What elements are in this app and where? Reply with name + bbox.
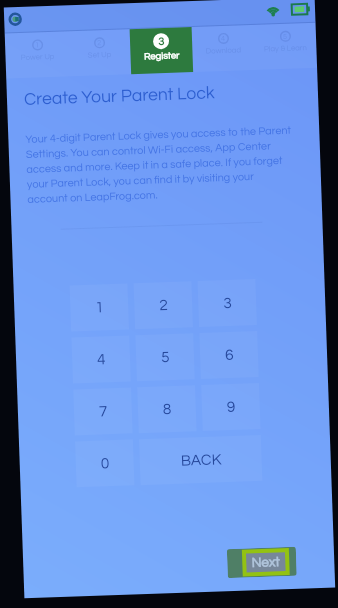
staticText: 1 xyxy=(95,299,105,316)
staticText: 4 xyxy=(221,35,226,43)
staticText: 7 xyxy=(99,403,108,419)
button[interactable]: 0 xyxy=(75,439,135,487)
staticText: Play & Learn xyxy=(263,44,308,53)
button[interactable]: 1 xyxy=(5,31,69,79)
staticText: 6 xyxy=(225,347,234,363)
staticText: Register xyxy=(143,50,180,62)
staticText: 0 xyxy=(100,455,110,471)
staticText: Next xyxy=(251,555,281,570)
staticText: 4 xyxy=(97,351,106,368)
staticText: Power Up xyxy=(20,53,55,62)
staticText: 1 xyxy=(35,41,40,50)
button[interactable]: 5 xyxy=(253,23,317,70)
staticText: Download xyxy=(205,46,242,56)
staticText: 5 xyxy=(161,349,170,365)
button[interactable]: 3 xyxy=(130,27,193,74)
staticText: 5 xyxy=(283,33,288,41)
staticText: Your 4-digit Parent Lock gives you acces… xyxy=(25,125,295,205)
button[interactable]: BACK xyxy=(139,435,262,485)
staticText: 9 xyxy=(227,399,236,415)
button[interactable]: 2 xyxy=(133,281,193,329)
button[interactable]: 4 xyxy=(71,335,131,383)
button[interactable]: 8 xyxy=(137,385,197,433)
other: Wi-Fi xyxy=(266,3,280,17)
button[interactable]: 2 xyxy=(68,29,131,76)
button[interactable]: 9 xyxy=(201,383,261,431)
other: Battery xyxy=(291,3,310,16)
button[interactable]: 6 xyxy=(199,331,259,379)
button[interactable]: 5 xyxy=(135,333,195,381)
button[interactable]: 3 xyxy=(197,279,257,327)
button[interactable]: 7 xyxy=(73,387,133,435)
staticText: Create Your Parent Lock xyxy=(24,84,215,109)
button[interactable]: Next xyxy=(227,547,297,578)
staticText: Set Up xyxy=(87,51,112,60)
button[interactable]: 1 xyxy=(69,283,129,331)
staticText: 2 xyxy=(159,297,169,313)
button[interactable]: 4 xyxy=(192,25,255,72)
staticText: BACK xyxy=(180,451,222,469)
staticText: 3 xyxy=(223,295,232,311)
staticText: 3 xyxy=(158,36,165,47)
other: Home xyxy=(9,13,21,25)
staticText: 8 xyxy=(163,401,172,417)
